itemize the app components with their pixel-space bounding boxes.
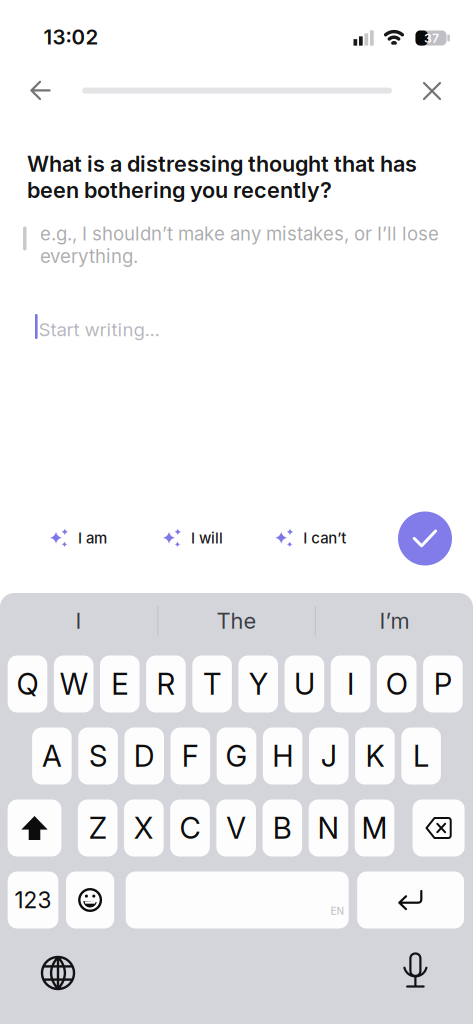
button[interactable]: Emoji (66, 871, 114, 928)
button[interactable]: U (285, 655, 324, 712)
button[interactable]: A (32, 727, 72, 784)
staticText: 123 (14, 886, 51, 914)
staticText: O (386, 666, 408, 702)
button[interactable]: Return (357, 871, 464, 928)
staticText: A (42, 738, 62, 774)
staticText: I (347, 666, 354, 702)
staticText: X (134, 810, 154, 846)
button[interactable]: M (355, 799, 394, 856)
staticText: 13:02 (43, 25, 98, 49)
staticText: J (321, 738, 337, 774)
staticText: I (75, 607, 81, 634)
button[interactable]: R (146, 655, 186, 712)
staticText: R (156, 666, 175, 702)
button[interactable]: I’m (324, 599, 464, 643)
button[interactable]: Q (8, 655, 47, 712)
button[interactable]: Y (238, 655, 278, 712)
button[interactable]: Done (398, 511, 452, 565)
staticText: K (365, 738, 384, 774)
staticText: W (60, 666, 88, 702)
staticText: I’m (379, 607, 409, 634)
button[interactable]: D (124, 727, 164, 784)
button[interactable]: S (78, 727, 118, 784)
button[interactable]: Shift (8, 799, 61, 856)
button[interactable]: W (54, 655, 93, 712)
button[interactable]: N (309, 799, 348, 856)
staticText: D (134, 738, 155, 774)
button[interactable]: Space (126, 871, 349, 928)
staticText: Q (16, 666, 38, 702)
button[interactable]: K (355, 727, 395, 784)
staticText: Y (249, 666, 268, 702)
staticText: B (273, 810, 292, 846)
staticText: Start writing... (38, 318, 159, 341)
staticText: P (434, 666, 452, 702)
button[interactable]: I can’t (275, 528, 346, 548)
button[interactable]: B (262, 799, 302, 856)
button[interactable]: H (263, 727, 302, 784)
button[interactable]: J (309, 727, 349, 784)
staticText: L (413, 738, 429, 774)
button[interactable]: Dictation (404, 952, 427, 987)
staticText: C (179, 810, 200, 846)
button[interactable]: I (8, 599, 148, 643)
button[interactable]: G (217, 727, 256, 784)
button[interactable]: Back (30, 81, 51, 100)
button[interactable]: Next keyboard (41, 956, 75, 990)
button[interactable]: X (124, 799, 164, 856)
staticText: The (216, 607, 256, 634)
button[interactable]: The (166, 599, 306, 643)
button[interactable]: I (331, 655, 370, 712)
staticText: E (111, 666, 128, 702)
staticText: H (272, 738, 293, 774)
button[interactable]: F (170, 727, 210, 784)
button[interactable]: Close (423, 82, 441, 100)
staticText: 37 (424, 31, 439, 46)
staticText: I am (78, 529, 107, 547)
button[interactable]: O (377, 655, 416, 712)
button[interactable]: L (401, 727, 441, 784)
staticText: I can’t (303, 529, 346, 547)
button[interactable]: Delete (413, 799, 465, 856)
staticText: G (225, 738, 247, 774)
staticText: EN (330, 905, 344, 917)
button[interactable]: V (216, 799, 256, 856)
staticText: T (203, 666, 221, 702)
staticText: Z (89, 810, 107, 846)
button[interactable]: E (100, 655, 140, 712)
button[interactable]: P (423, 655, 463, 712)
staticText: What is a distressing thought that has b… (27, 151, 417, 203)
staticText: S (89, 738, 107, 774)
button[interactable]: T (192, 655, 232, 712)
staticText: F (182, 738, 199, 774)
button[interactable]: Z (78, 799, 117, 856)
staticText: U (294, 666, 315, 702)
staticText: I will (191, 529, 223, 547)
button[interactable]: 123 (8, 871, 58, 928)
staticText: N (317, 810, 339, 846)
button[interactable]: I am (50, 528, 107, 548)
button[interactable]: I will (163, 528, 223, 548)
button[interactable]: C (170, 799, 210, 856)
staticText: e.g., I shouldn’t make any mistakes, or … (40, 222, 439, 267)
staticText: V (226, 810, 246, 846)
staticText: M (362, 810, 388, 846)
